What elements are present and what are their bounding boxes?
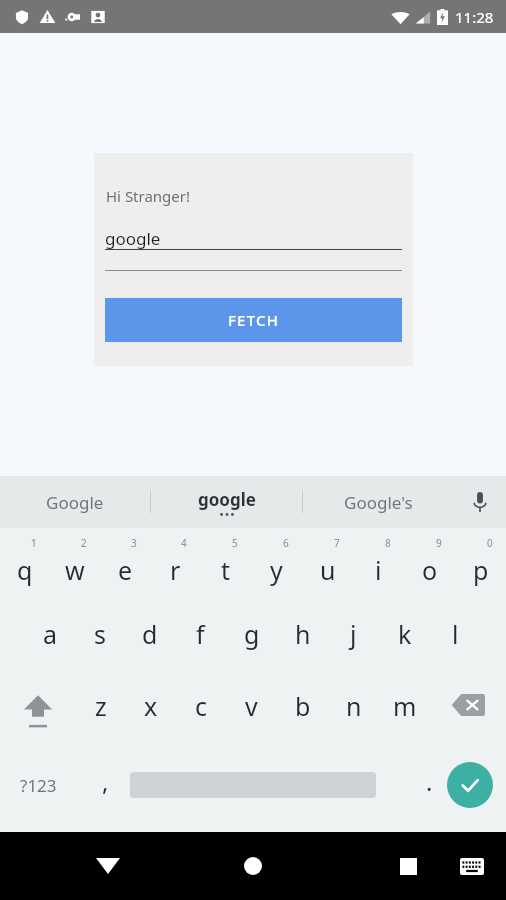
button[interactable]: Enter [447, 762, 493, 808]
staticText: Google [46, 491, 104, 514]
button[interactable]: Home [229, 842, 277, 890]
staticText: 9 [436, 536, 442, 550]
staticText: 7 [334, 536, 340, 550]
staticText: o [422, 553, 438, 587]
staticText: Google's [344, 491, 413, 514]
staticText: 0 [487, 536, 493, 550]
staticText: google [198, 488, 256, 511]
button[interactable]: x [126, 672, 176, 750]
staticText: q [17, 553, 33, 587]
staticText: v [245, 689, 258, 723]
staticText: 8 [385, 536, 391, 550]
button[interactable]: m [379, 672, 430, 750]
staticText: z [95, 689, 107, 723]
staticText: m [393, 689, 417, 723]
staticText: n [346, 689, 362, 723]
staticText: t [221, 553, 231, 587]
button[interactable]: 7 [302, 534, 353, 596]
staticText: d [142, 617, 158, 651]
button[interactable]: 2 [50, 534, 100, 596]
staticText: k [398, 617, 412, 651]
staticText: 1 [31, 536, 37, 550]
button[interactable]: 6 [251, 534, 302, 596]
staticText: google [105, 227, 161, 250]
button[interactable]: Voice input [454, 476, 506, 528]
staticText: 2 [81, 536, 87, 550]
button[interactable]: l [430, 596, 481, 672]
button[interactable]: g [226, 596, 277, 672]
button[interactable]: Hide keyboard [84, 842, 132, 890]
button[interactable]: . [406, 750, 452, 820]
button[interactable]: j [328, 596, 379, 672]
staticText: i [375, 553, 382, 587]
button[interactable]: v [226, 672, 277, 750]
button[interactable]: 0 [455, 534, 506, 596]
button[interactable]: s [75, 596, 125, 672]
button[interactable]: f [175, 596, 226, 672]
button[interactable]: ?123 [0, 750, 76, 820]
button[interactable]: google [151, 476, 302, 528]
button[interactable]: Switch keyboard [448, 842, 496, 890]
button[interactable]: Backspace [430, 672, 506, 750]
staticText: y [270, 553, 283, 587]
staticText: g [244, 617, 260, 651]
button[interactable]: , [80, 750, 130, 820]
button[interactable]: Google's [303, 476, 454, 528]
button[interactable]: 8 [353, 534, 404, 596]
button[interactable]: Shift [0, 672, 76, 750]
button[interactable]: a [25, 596, 75, 672]
button[interactable]: 9 [404, 534, 455, 596]
staticText: 5 [232, 536, 238, 550]
staticText: e [118, 553, 133, 587]
button[interactable]: 1 [0, 534, 50, 596]
staticText: 4 [181, 536, 187, 550]
staticText: s [94, 617, 106, 651]
button[interactable]: 5 [200, 534, 251, 596]
staticText: c [195, 689, 208, 723]
staticText: b [295, 689, 311, 723]
button[interactable]: Recents [384, 842, 432, 890]
button[interactable]: FETCH [105, 298, 402, 342]
button[interactable]: 4 [150, 534, 200, 596]
staticText: x [144, 689, 158, 723]
staticText: Hi Stranger! [106, 186, 191, 206]
staticText: a [43, 617, 58, 651]
staticText: u [320, 553, 336, 587]
staticText: . [426, 765, 433, 798]
staticText: r [170, 553, 181, 587]
button[interactable]: b [277, 672, 328, 750]
staticText: w [65, 553, 85, 587]
staticText: , [102, 765, 109, 798]
staticText: ?123 [20, 774, 57, 797]
staticText: p [473, 553, 489, 587]
button[interactable]: 3 [100, 534, 150, 596]
button[interactable]: Google [0, 476, 150, 528]
staticText: f [196, 617, 205, 651]
staticText: l [452, 617, 459, 651]
button[interactable]: c [176, 672, 226, 750]
staticText: 11:28 [455, 7, 494, 27]
button[interactable]: z [76, 672, 126, 750]
staticText: FETCH [228, 310, 280, 330]
button[interactable]: k [379, 596, 430, 672]
staticText: 6 [283, 536, 289, 550]
staticText: 3 [131, 536, 137, 550]
staticText: h [295, 617, 311, 651]
button[interactable]: n [328, 672, 379, 750]
button[interactable]: h [277, 596, 328, 672]
button[interactable]: d [125, 596, 175, 672]
staticText: j [350, 617, 357, 651]
